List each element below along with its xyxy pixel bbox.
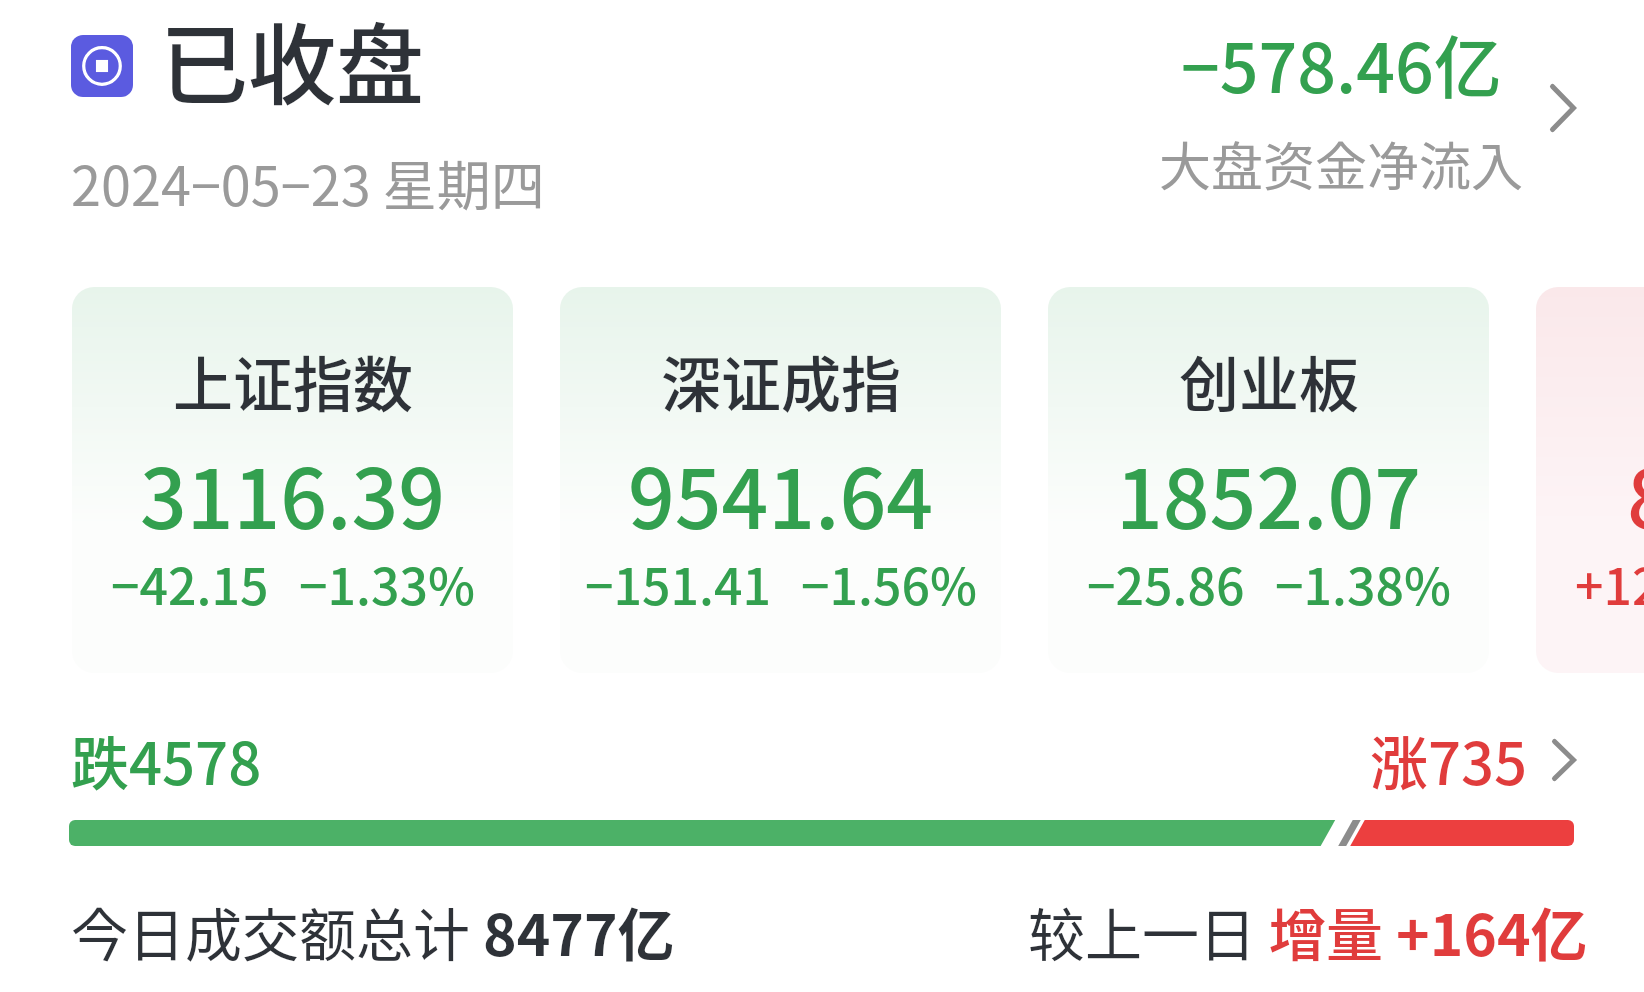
button[interactable]: 创业板 — [1048, 287, 1489, 673]
staticText: −25.86 — [1087, 547, 1245, 619]
other: View market capital flow details — [1550, 84, 1576, 132]
staticText: 2024−05−23 星期四 — [71, 143, 545, 221]
button[interactable]: 涨735 — [1370, 718, 1576, 802]
other: Market status — [71, 35, 133, 97]
staticText: 上证指数 — [173, 337, 413, 424]
staticText: −151.41 — [585, 547, 771, 619]
staticText: −1.33% — [299, 547, 475, 619]
staticText: 较上一日 — [1028, 890, 1269, 973]
staticText: 3116.39 — [140, 434, 445, 553]
button[interactable]: 上证指数 — [72, 287, 513, 673]
other: View advancers and decliners — [1552, 739, 1576, 781]
staticText: 9541.64 — [628, 434, 933, 553]
staticText: 已收盘 — [160, 0, 425, 122]
staticText: 8477亿 — [483, 890, 675, 973]
staticText: 1852.07 — [1116, 434, 1421, 553]
staticText: 854.21 — [1627, 434, 1644, 553]
staticText: −1.56% — [801, 547, 977, 619]
staticText: 跌4578 — [71, 718, 262, 802]
staticText: −578.46亿 — [1181, 14, 1502, 112]
button[interactable]: 深证成指 — [560, 287, 1001, 673]
staticText: 涨735 — [1370, 718, 1528, 802]
button[interactable]: −578.46亿 — [1159, 14, 1576, 201]
staticText: 深证成指 — [661, 337, 901, 424]
staticText: −42.15 — [111, 547, 269, 619]
button[interactable]: 科创50 — [1536, 287, 1644, 673]
staticText: +12.86 — [1575, 547, 1644, 619]
staticText: 大盘资金净流入 — [1159, 126, 1524, 201]
staticText: −1.38% — [1275, 547, 1451, 619]
staticText: 今日成交额总计 — [71, 890, 483, 973]
staticText: 增量 — [1269, 890, 1396, 973]
staticText: +164亿 — [1396, 890, 1588, 973]
staticText: 创业板 — [1179, 337, 1359, 424]
